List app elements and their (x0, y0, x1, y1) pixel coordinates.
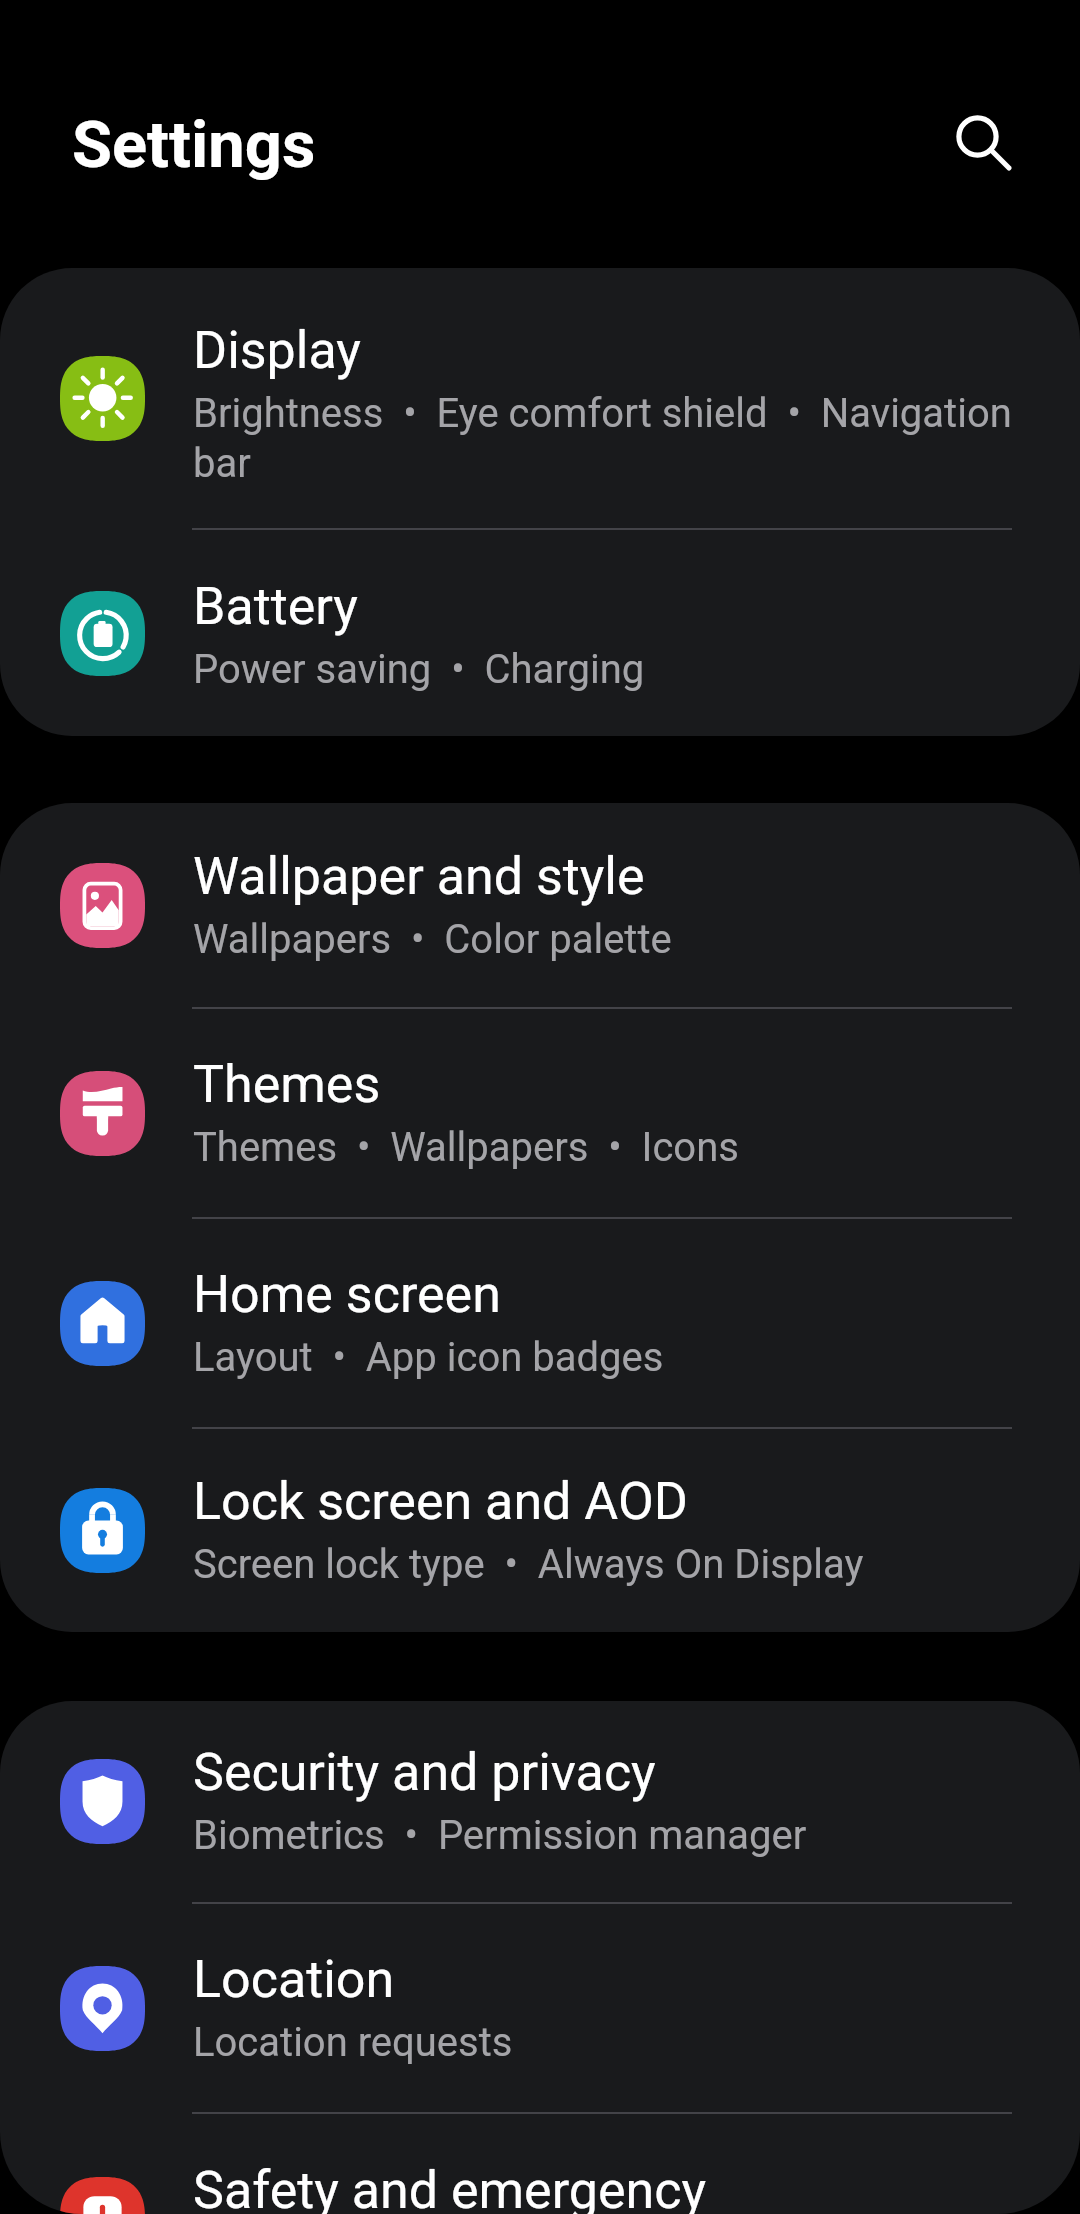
staticText: Themes • Wallpapers • Icons (193, 1121, 739, 1171)
staticText: Display (193, 320, 361, 381)
staticText: Lock screen and AOD (193, 1471, 688, 1532)
button[interactable]: Security and privacy (0, 1701, 1080, 1902)
staticText: Settings (72, 107, 316, 183)
staticText: Battery (193, 576, 358, 637)
staticText: Location requests (193, 2016, 513, 2066)
button[interactable]: Lock screen and AOD (0, 1429, 1080, 1632)
staticText: Location (193, 1949, 395, 2010)
button[interactable]: Display (0, 268, 1080, 528)
staticText: Wallpapers • Color palette (193, 913, 672, 963)
staticText: Layout • App icon badges (193, 1331, 664, 1381)
button[interactable]: Themes (0, 1009, 1080, 1217)
button[interactable]: Battery (0, 530, 1080, 736)
button[interactable]: Search (923, 82, 1043, 202)
staticText: Home screen (193, 1264, 501, 1325)
staticText: Wallpaper and style (193, 846, 645, 907)
staticText: Security and privacy (193, 1742, 656, 1803)
staticText: Power saving • Charging (193, 643, 645, 693)
button[interactable]: Safety and emergency (0, 2114, 1080, 2214)
staticText: Biometrics • Permission manager (193, 1809, 807, 1859)
staticText: Themes (193, 1054, 381, 1115)
button[interactable]: Home screen (0, 1219, 1080, 1427)
button[interactable]: Location (0, 1904, 1080, 2112)
button[interactable]: Wallpaper and style (0, 803, 1080, 1007)
staticText: Safety and emergency (193, 2160, 707, 2214)
staticText: Screen lock type • Always On Display (193, 1538, 864, 1588)
staticText: Brightness • Eye comfort shield • Naviga… (193, 387, 1024, 487)
